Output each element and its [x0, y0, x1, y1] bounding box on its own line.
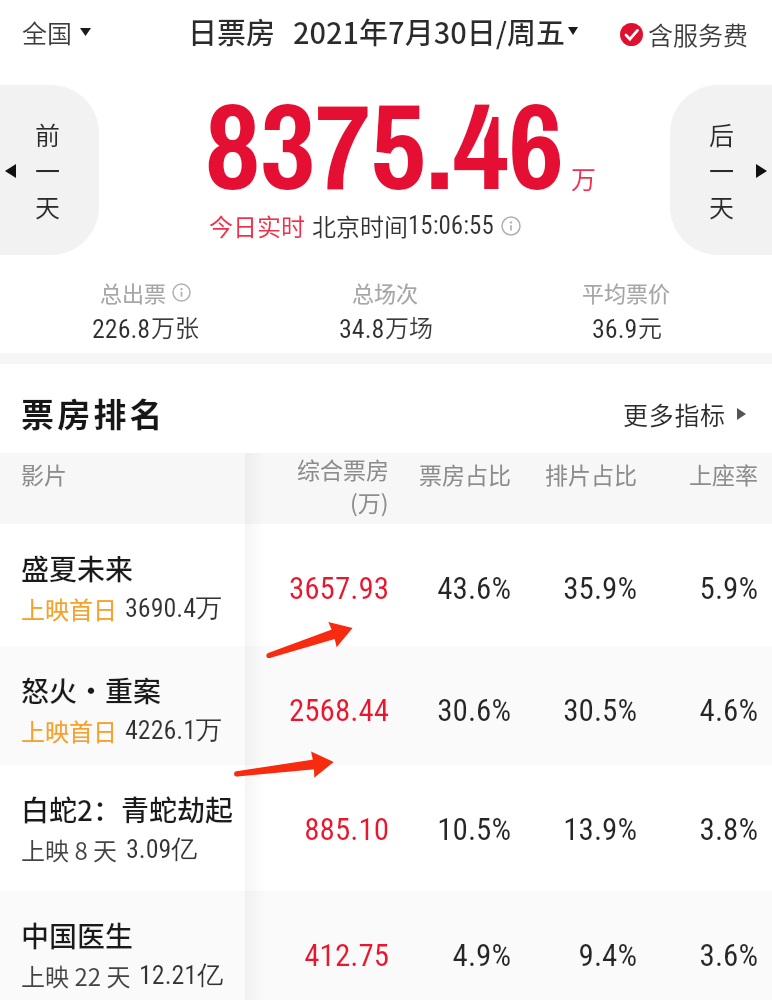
- staticText: 15:06:55: [408, 211, 494, 240]
- staticText: 885.10: [219, 811, 389, 847]
- staticText: 4226.1万: [125, 714, 223, 747]
- staticText: 天: [35, 188, 61, 224]
- staticText: 3.8%: [588, 811, 758, 847]
- staticText: 盛夏未来: [21, 548, 134, 589]
- staticText: 平均票价: [582, 276, 671, 308]
- staticText: 全国: [22, 14, 73, 50]
- staticText: 怒火·重案: [21, 670, 162, 711]
- button[interactable]: 日票房: [188, 10, 578, 52]
- staticText: 白蛇2：青蛇劫起: [21, 789, 233, 830]
- staticText: 10.5%: [341, 811, 511, 847]
- staticText: 30.5%: [467, 692, 637, 728]
- button[interactable]: 总出票: [25, 276, 265, 344]
- staticText: 8375.46: [205, 64, 564, 227]
- staticText: 中国医生: [21, 915, 134, 956]
- staticText: 一: [35, 152, 61, 188]
- staticText: 3657.93: [219, 570, 389, 606]
- button[interactable]: 怒火·重案: [0, 646, 772, 765]
- staticText: 412.75: [219, 937, 389, 973]
- staticText: 226.8: [92, 314, 151, 344]
- staticText: 排片占比: [487, 457, 637, 490]
- staticText: 更多指标: [623, 396, 726, 432]
- staticText: 票房占比: [361, 457, 511, 490]
- staticText: 上映 22 天: [21, 958, 131, 993]
- button[interactable]: 平均票价: [506, 276, 747, 344]
- staticText: 天: [709, 188, 735, 224]
- button[interactable]: 全国: [22, 14, 91, 50]
- staticText: 36.9: [592, 314, 638, 344]
- staticText: (万): [350, 485, 389, 518]
- staticText: 13.9%: [467, 811, 637, 847]
- staticText: 9.4%: [467, 937, 637, 973]
- button[interactable]: 前一天: [0, 85, 99, 255]
- staticText: 综合票房: [297, 452, 389, 485]
- staticText: 上映首日: [21, 713, 117, 748]
- staticText: 一: [709, 152, 735, 188]
- staticText: 北京时间: [312, 208, 408, 243]
- staticText: 影片: [21, 457, 67, 490]
- staticText: 4.6%: [588, 692, 758, 728]
- button[interactable]: 含服务费: [620, 16, 749, 52]
- button[interactable]: 后一天: [670, 85, 772, 255]
- staticText: 4.9%: [341, 937, 511, 973]
- staticText: 总场次: [352, 276, 419, 308]
- staticText: 5.9%: [588, 570, 758, 606]
- staticText: 元: [638, 309, 662, 344]
- button[interactable]: 总场次: [265, 276, 506, 344]
- button[interactable]: 中国医生: [0, 891, 772, 1000]
- staticText: 今日实时: [209, 208, 305, 243]
- staticText: 3690.4万: [125, 592, 223, 625]
- staticText: 上映 8 天: [21, 832, 118, 867]
- staticText: 万: [571, 160, 597, 196]
- button[interactable]: 白蛇2：青蛇劫起: [0, 765, 772, 891]
- staticText: 12.21亿: [139, 959, 224, 992]
- staticText: 前: [35, 116, 61, 152]
- staticText: 票房排名: [21, 389, 166, 437]
- staticText: 30.6%: [341, 692, 511, 728]
- staticText: 上映首日: [21, 591, 117, 626]
- staticText: 2568.44: [219, 692, 389, 728]
- staticText: 日票房: [188, 10, 276, 52]
- staticText: 34.8: [339, 314, 385, 344]
- staticText: 3.6%: [588, 937, 758, 973]
- staticText: 万场: [385, 309, 433, 344]
- staticText: 万张: [151, 309, 199, 344]
- staticText: 含服务费: [648, 16, 749, 52]
- button[interactable]: 更多指标: [623, 396, 746, 432]
- staticText: 后: [709, 116, 735, 152]
- staticText: 43.6%: [341, 570, 511, 606]
- staticText: 2021年7月30日/周五: [293, 10, 566, 52]
- staticText: 上座率: [608, 457, 758, 490]
- staticText: 总出票: [100, 276, 167, 308]
- button[interactable]: 盛夏未来: [0, 524, 772, 646]
- button[interactable]: 票房排名: [21, 389, 166, 437]
- staticText: 35.9%: [467, 570, 637, 606]
- staticText: 3.09亿: [126, 833, 198, 866]
